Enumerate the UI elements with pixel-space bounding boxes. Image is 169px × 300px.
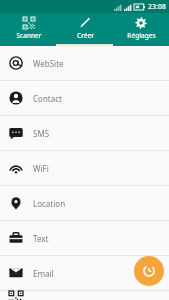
staticText: WebSite — [33, 58, 64, 69]
staticText: Location — [33, 198, 66, 209]
staticText: Scanner — [16, 31, 42, 40]
button[interactable]: WiFi — [0, 151, 169, 185]
staticText: Email — [33, 268, 54, 279]
button[interactable]: WebSite — [0, 46, 169, 80]
staticText: Text — [33, 233, 49, 244]
button[interactable]: Réglages — [113, 13, 169, 46]
button[interactable] — [0, 291, 169, 300]
staticText: Réglages — [127, 31, 156, 40]
staticText: Contact — [33, 93, 62, 104]
staticText: 23:08 — [148, 2, 166, 12]
button[interactable]: Contact — [0, 81, 169, 115]
button[interactable]: Location — [0, 186, 169, 220]
button[interactable]: Scanner — [0, 13, 57, 46]
button[interactable]: Créer — [57, 13, 113, 46]
button[interactable]: SMS — [0, 116, 169, 150]
staticText: SMS — [33, 128, 50, 139]
staticText: Créer — [77, 31, 94, 40]
button[interactable]: Text — [0, 221, 169, 255]
staticText: WiFi — [33, 163, 49, 174]
button[interactable]: Email — [0, 256, 169, 290]
button[interactable]: History — [134, 256, 164, 286]
